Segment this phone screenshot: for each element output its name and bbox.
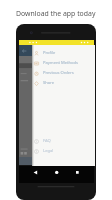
staticText: Share xyxy=(43,80,54,86)
staticText: Previous Orders xyxy=(43,70,74,76)
staticText: Download the app today xyxy=(16,9,96,18)
button[interactable]: Share xyxy=(32,78,95,88)
staticText: FAQ xyxy=(43,138,51,144)
staticText: Legal xyxy=(43,148,54,154)
button[interactable]: Legal xyxy=(32,146,95,156)
staticText: Profile xyxy=(43,50,56,56)
button[interactable]: Profile xyxy=(32,48,95,58)
button[interactable]: FAQ xyxy=(32,136,95,146)
staticText: Payment Methods xyxy=(43,60,79,66)
button[interactable]: Payment Methods xyxy=(32,58,95,68)
button[interactable]: Previous Orders xyxy=(32,68,95,78)
